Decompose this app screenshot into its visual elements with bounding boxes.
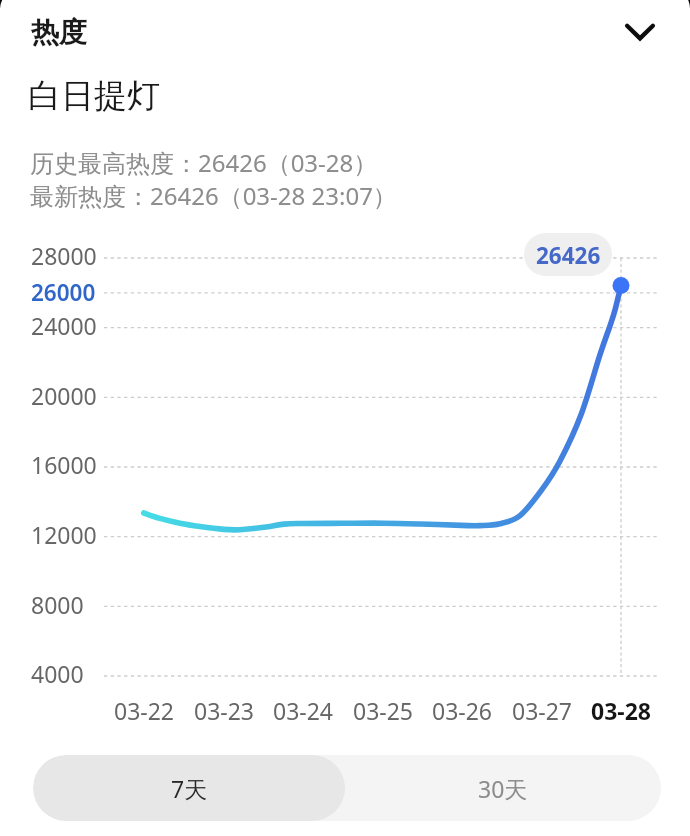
staticText: 03-27 (492, 695, 592, 726)
staticText: 28000 (31, 240, 97, 271)
staticText: 24000 (31, 310, 97, 341)
staticText: 20000 (31, 380, 97, 411)
staticText: 热度 (31, 15, 87, 50)
button[interactable]: 7天 (33, 755, 345, 821)
staticText: 最新热度：26426（03-28 23:07） (30, 179, 397, 212)
staticText: 03-28 (571, 695, 671, 726)
staticText: 03-23 (174, 695, 274, 726)
staticText: 白日提灯 (28, 75, 160, 117)
staticText: 03-25 (333, 695, 433, 726)
button[interactable]: Collapse (614, 6, 666, 58)
staticText: 30天 (478, 773, 528, 804)
staticText: 4000 (31, 658, 84, 689)
staticText: 26000 (31, 277, 96, 308)
staticText: 03-24 (253, 695, 353, 726)
staticText: 03-22 (94, 695, 194, 726)
staticText: 7天 (171, 773, 208, 804)
staticText: 8000 (31, 589, 84, 620)
staticText: 26426 (536, 240, 601, 271)
button[interactable]: 30天 (345, 755, 661, 821)
staticText: 历史最高热度：26426（03-28） (30, 146, 378, 179)
button[interactable]: 26426 (524, 233, 612, 276)
staticText: 03-26 (412, 695, 512, 726)
staticText: 16000 (31, 449, 97, 480)
staticText: 12000 (31, 519, 97, 550)
